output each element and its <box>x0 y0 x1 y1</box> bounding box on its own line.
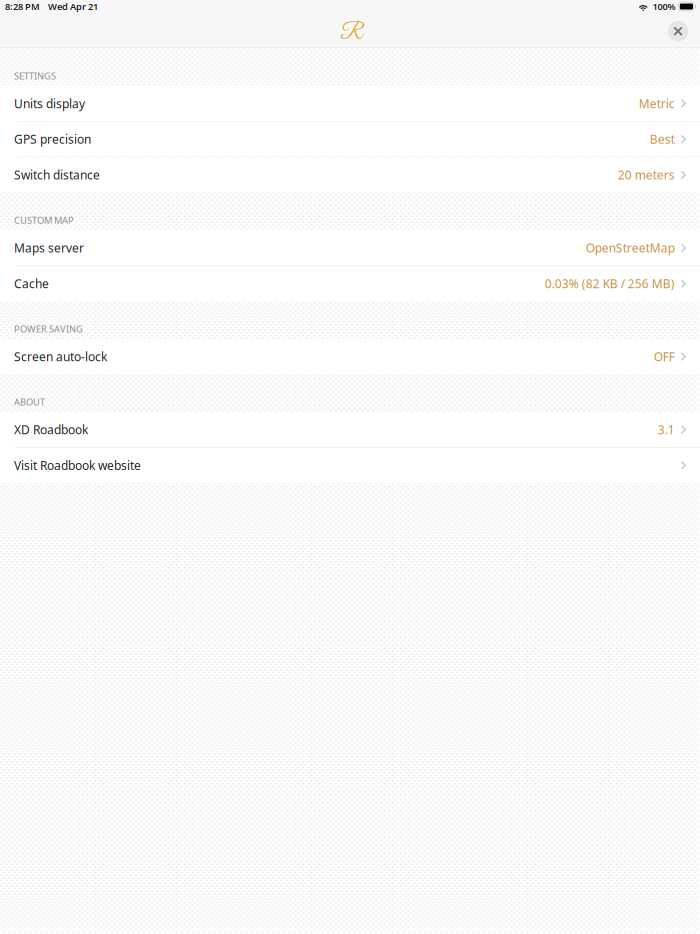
button[interactable]: Cache <box>0 266 700 301</box>
staticText: Wed Apr 21 <box>48 0 98 13</box>
staticText: 20 meters <box>618 167 675 183</box>
staticText: Maps server <box>14 240 84 256</box>
staticText: CUSTOM MAP <box>14 214 74 226</box>
staticText: GPS precision <box>14 131 91 147</box>
staticText: 8:28 PM <box>5 0 40 13</box>
button[interactable]: Units display <box>0 86 700 122</box>
staticText: POWER SAVING <box>14 323 83 335</box>
staticText: OFF <box>654 349 675 364</box>
button[interactable]: Switch distance <box>0 157 700 192</box>
button[interactable]: XD Roadbook <box>0 412 700 448</box>
button[interactable]: Maps server <box>0 230 700 266</box>
button[interactable]: GPS precision <box>0 122 700 157</box>
staticText: Units display <box>14 95 85 111</box>
button[interactable]: Visit Roadbook website <box>0 448 700 483</box>
staticText: R <box>340 20 362 46</box>
staticText: Best <box>650 131 675 147</box>
button[interactable]: Close <box>666 19 690 43</box>
staticText: SETTINGS <box>14 70 56 82</box>
staticText: Switch distance <box>14 167 100 183</box>
staticText: ABOUT <box>14 396 45 408</box>
staticText: Cache <box>14 276 49 291</box>
staticText: 3.1 <box>658 422 675 437</box>
staticText: Visit Roadbook website <box>14 457 141 473</box>
staticText: 100% <box>652 0 675 13</box>
staticText: Screen auto-lock <box>14 349 107 364</box>
staticText: XD Roadbook <box>14 422 88 437</box>
staticText: OpenStreetMap <box>586 240 675 256</box>
button[interactable]: Screen auto-lock <box>0 339 700 374</box>
staticText: 0.03% (82 KB / 256 MB) <box>545 276 675 291</box>
staticText: Metric <box>639 95 675 111</box>
